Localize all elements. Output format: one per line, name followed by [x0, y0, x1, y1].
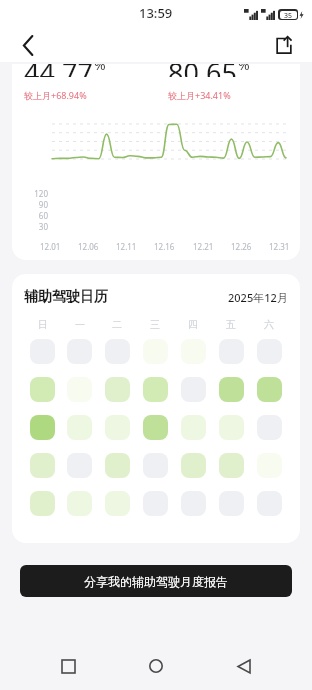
staticText: 12.26	[231, 241, 252, 252]
staticText: 12.06	[78, 241, 99, 252]
staticText: 五	[226, 318, 236, 331]
button[interactable]: Day	[257, 415, 282, 440]
staticText: 四	[188, 318, 198, 331]
button[interactable]: Day	[67, 377, 92, 402]
button[interactable]: Day	[30, 339, 55, 364]
staticText: 三	[150, 318, 160, 331]
staticText: 60	[38, 210, 48, 221]
button[interactable]: Home	[136, 646, 176, 686]
staticText: %	[94, 64, 106, 74]
button[interactable]: Day	[181, 453, 206, 478]
button[interactable]: Day	[257, 491, 282, 516]
staticText: 35	[284, 11, 293, 19]
staticText: 2025年12月	[228, 290, 288, 305]
button[interactable]: Day	[219, 377, 244, 402]
staticText: 六	[264, 318, 274, 331]
button[interactable]: Day	[181, 339, 206, 364]
button[interactable]: Recents	[48, 646, 88, 686]
button[interactable]: Day	[143, 339, 168, 364]
button[interactable]: Day	[67, 415, 92, 440]
staticText: 80.65	[168, 64, 238, 77]
button[interactable]: Day	[67, 491, 92, 516]
button[interactable]: Day	[143, 453, 168, 478]
staticText: 二	[112, 318, 122, 331]
button[interactable]: Day	[219, 453, 244, 478]
staticText: 13:59	[139, 4, 173, 22]
staticText: 较上月+68.94%	[24, 89, 87, 101]
staticText: 12.11	[116, 241, 137, 252]
staticText: 12.16	[154, 241, 175, 252]
button[interactable]: Day	[257, 377, 282, 402]
button[interactable]: Day	[257, 453, 282, 478]
button[interactable]: Day	[30, 491, 55, 516]
staticText: 分享我的辅助驾驶月度报告	[84, 574, 228, 589]
button[interactable]: Day	[105, 491, 130, 516]
button[interactable]: Day	[67, 453, 92, 478]
button[interactable]: Day	[105, 377, 130, 402]
staticText: %	[238, 64, 250, 74]
button[interactable]: Day	[67, 339, 92, 364]
staticText: 一	[75, 318, 85, 331]
staticText: 90	[38, 199, 48, 210]
staticText: 辅助驾驶日历	[24, 288, 108, 306]
button[interactable]: Day	[143, 377, 168, 402]
button[interactable]: 分享我的辅助驾驶月度报告	[20, 565, 292, 597]
button[interactable]: Day	[30, 415, 55, 440]
staticText: 12.01	[40, 241, 61, 252]
staticText: 12.31	[269, 241, 290, 252]
button[interactable]: Back	[224, 646, 264, 686]
button[interactable]: Day	[181, 491, 206, 516]
button[interactable]: Day	[30, 377, 55, 402]
staticText: 44.77	[24, 64, 94, 77]
button[interactable]: Day	[143, 415, 168, 440]
staticText: 120	[34, 188, 48, 199]
button[interactable]: Back	[12, 29, 44, 61]
button[interactable]: Day	[219, 415, 244, 440]
button[interactable]: Day	[30, 453, 55, 478]
button[interactable]: Share	[268, 29, 300, 61]
button[interactable]: Day	[105, 453, 130, 478]
button[interactable]: Day	[219, 339, 244, 364]
staticText: 较上月+34.41%	[168, 89, 231, 101]
button[interactable]: Day	[219, 491, 244, 516]
button[interactable]: Day	[143, 491, 168, 516]
button[interactable]: Day	[105, 415, 130, 440]
button[interactable]: Day	[181, 415, 206, 440]
staticText: 日	[38, 318, 48, 331]
staticText: 30	[38, 221, 48, 230]
staticText: 12.21	[193, 241, 214, 252]
button[interactable]: Day	[105, 339, 130, 364]
button[interactable]: Day	[257, 339, 282, 364]
button[interactable]: Day	[181, 377, 206, 402]
